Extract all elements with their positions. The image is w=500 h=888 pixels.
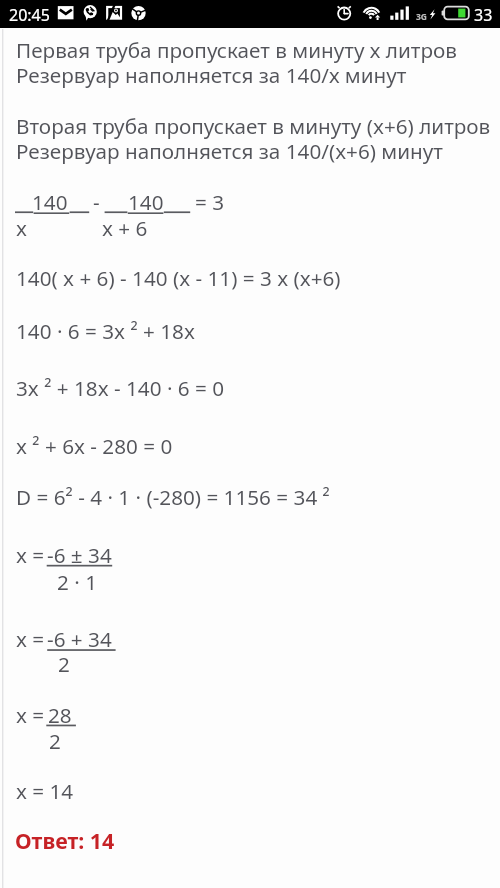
- staticText: 2 · 1: [57, 568, 97, 596]
- button[interactable]: Status bar: [0, 0, 500, 28]
- staticText: -6 + 34: [47, 625, 112, 653]
- staticText: 140( x + 6) - 140 (x - 11) = 3 x (x+6): [16, 264, 341, 292]
- staticText: 2: [49, 727, 61, 755]
- staticText: Ответ: 14: [15, 826, 115, 855]
- staticText: x =: [16, 701, 45, 729]
- staticText: 33: [474, 4, 493, 26]
- staticText: 140 · 6 = 3x ² + 18x: [16, 317, 195, 345]
- staticText: 3G: [416, 11, 428, 23]
- staticText: = 3: [195, 188, 225, 216]
- staticText: 28: [48, 701, 72, 729]
- staticText: D = 6² - 4 · 1 · (-280) = 1156 = 34 ²: [16, 483, 330, 511]
- staticText: 2: [58, 650, 70, 678]
- staticText: x =: [16, 625, 45, 653]
- staticText: x = 14: [16, 777, 74, 805]
- staticText: x: [16, 214, 27, 242]
- staticText: Первая труба пропускает в минуту х литро…: [16, 36, 457, 64]
- staticText: 140: [32, 188, 68, 216]
- staticText: x =: [16, 541, 45, 569]
- staticText: x + 6: [102, 214, 148, 242]
- staticText: x ² + 6x - 280 = 0: [16, 432, 173, 460]
- staticText: -6 ± 34: [47, 541, 112, 569]
- staticText: 140: [128, 188, 164, 216]
- staticText: Резервуар наполняется за 140/(x+6) минут: [16, 137, 443, 165]
- staticText: -: [93, 188, 100, 216]
- staticText: 3x ² + 18x - 140 · 6 = 0: [16, 374, 225, 402]
- staticText: Вторая труба пропускает в минуту (x+6) л…: [16, 112, 491, 140]
- staticText: Резервуар наполняется за 140/х минут: [16, 61, 407, 89]
- staticText: 20:45: [9, 4, 50, 26]
